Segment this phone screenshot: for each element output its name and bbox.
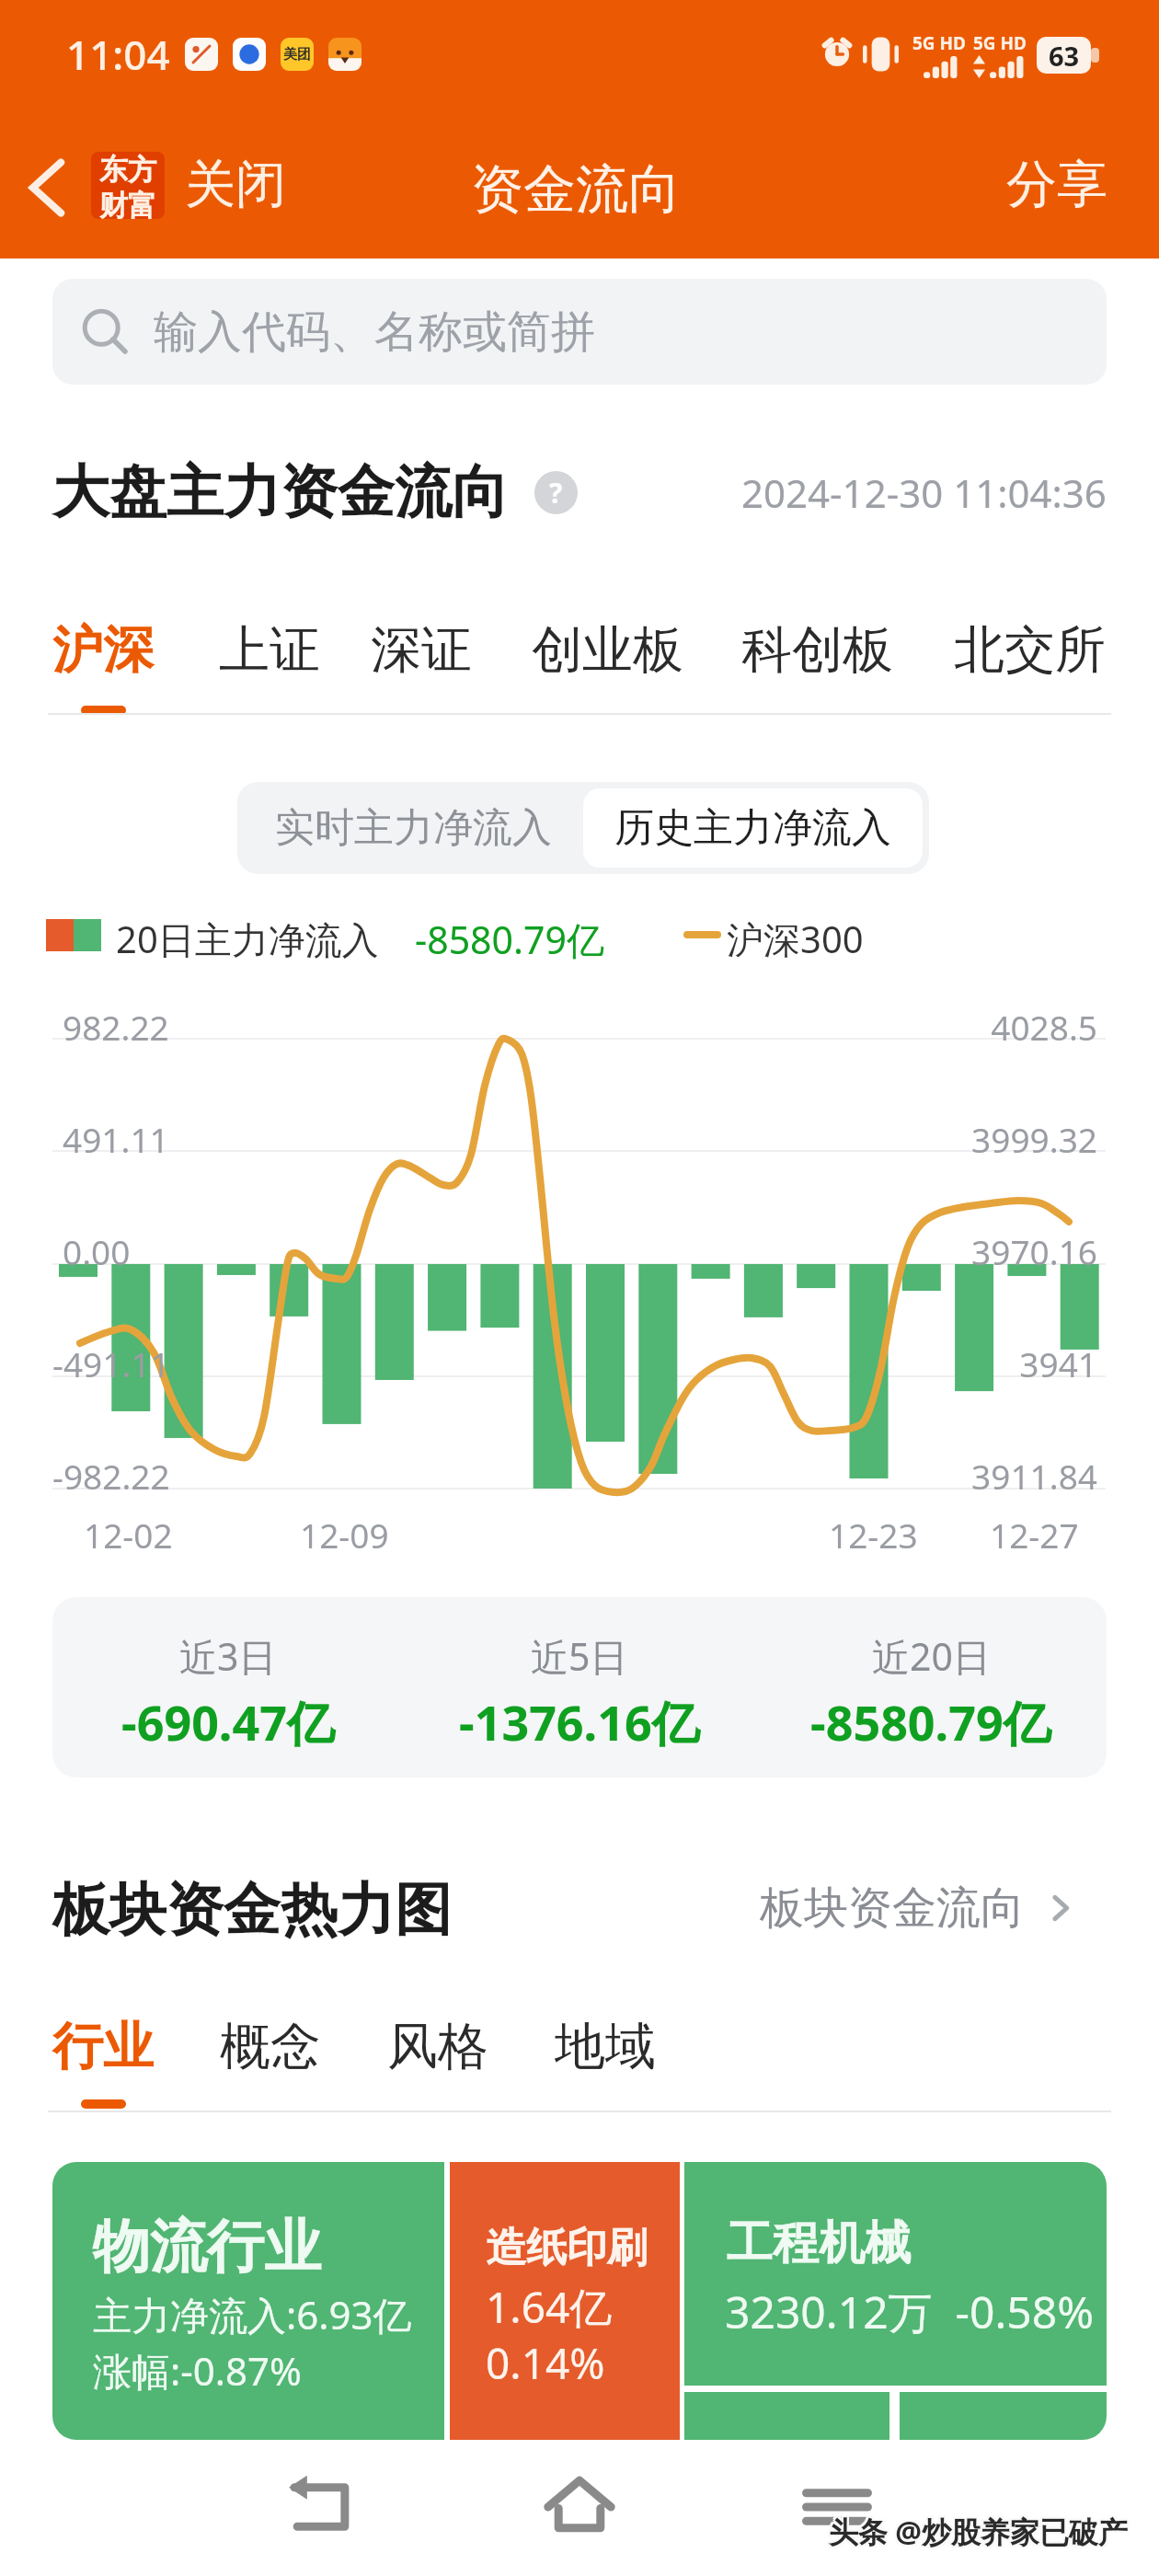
button[interactable]: 北交所 [954, 608, 1107, 691]
staticText: -8580.79亿 [810, 1689, 1051, 1754]
staticText: 491.11 [63, 1116, 169, 1162]
staticText: 0.14% [486, 2334, 605, 2392]
button[interactable]: Message notification [233, 38, 266, 71]
button[interactable] [684, 2392, 889, 2440]
staticText: 概念 [220, 2015, 321, 2078]
staticText: 3970.16 [819, 1228, 1097, 1274]
button[interactable]: 地域 [555, 2005, 658, 2087]
staticText: 东方 [99, 152, 156, 188]
staticText: -690.47亿 [121, 1689, 335, 1754]
staticText: -491.11 [52, 1340, 170, 1386]
staticText: 3941 [819, 1340, 1097, 1386]
staticText: 3999.32 [819, 1116, 1097, 1162]
staticText: 分享 [1006, 153, 1107, 216]
staticText: 4028.5 [819, 1004, 1097, 1050]
staticText: 12-09 [300, 1512, 389, 1558]
staticText: 沪深 [52, 618, 154, 682]
staticText: 大盘主力资金流向 [52, 456, 509, 528]
staticText: 造纸印刷 [486, 2223, 648, 2273]
staticText: 3230.12万 -0.58% [725, 2282, 1095, 2342]
staticText: 头条 @炒股养家已破产 [831, 2512, 1130, 2552]
staticText: 12-02 [84, 1512, 173, 1558]
button[interactable]: 沪深 [52, 608, 155, 691]
button[interactable]: 近20日 [755, 1597, 1107, 1777]
staticText: 3911.84 [819, 1453, 1097, 1499]
staticText: 创业板 [532, 618, 683, 682]
staticText: 0.00 [63, 1228, 131, 1274]
staticText: 63 [1049, 38, 1080, 74]
button[interactable]: Help [534, 471, 578, 514]
button[interactable]: 工程机械 [684, 2162, 1107, 2386]
staticText: 5G HD [973, 31, 1047, 55]
button[interactable]: 上证 [219, 608, 322, 691]
staticText: 输入代码、名称或简拼 [154, 305, 595, 360]
button[interactable]: 板块资金流向 [760, 1873, 1076, 1943]
button[interactable]: Back [17, 158, 76, 217]
staticText: 板块资金热力图 [52, 1874, 452, 1946]
staticText: 982.22 [63, 1004, 169, 1050]
button[interactable]: Home [520, 2447, 639, 2567]
staticText: 近3日 [179, 1630, 277, 1682]
button[interactable]: 风格 [387, 2005, 490, 2087]
button[interactable]: 近5日 [404, 1597, 755, 1777]
staticText: -8580.79亿 [415, 914, 604, 963]
button[interactable]: 物流行业 [52, 2162, 444, 2440]
staticText: 风格 [387, 2015, 488, 2078]
staticText: 资金流向 [471, 156, 681, 223]
staticText: 头条 @炒股养家已破产 [829, 2512, 1129, 2552]
staticText: 5G HD [912, 31, 986, 55]
staticText: 沪深300 [727, 914, 864, 963]
staticText: 财富 [99, 188, 156, 219]
staticText: 涨幅:-0.87% [93, 2344, 303, 2397]
button[interactable]: App notification [185, 38, 218, 71]
staticText: 近5日 [531, 1630, 628, 1682]
staticText: 头条 @炒股养家已破产 [829, 2513, 1129, 2554]
staticText: 关闭 [185, 153, 286, 216]
staticText: 头条 @炒股养家已破产 [829, 2512, 1129, 2552]
staticText: 物流行业 [93, 2211, 321, 2283]
staticText: 主力净流入:6.93亿 [93, 2288, 412, 2340]
staticText: 实时主力净流入 [275, 803, 552, 853]
staticText: ? [549, 474, 563, 512]
staticText: 头条 @炒股养家已破产 [827, 2513, 1127, 2554]
staticText: 历史主力净流入 [614, 803, 891, 853]
staticText: 工程机械 [727, 2214, 911, 2272]
button[interactable]: 历史主力净流入 [583, 788, 923, 868]
button[interactable]: 行业 [52, 2005, 155, 2087]
button[interactable]: 分享 [983, 138, 1130, 230]
button[interactable]: 创业板 [532, 608, 684, 691]
staticText: 头条 @炒股养家已破产 [827, 2510, 1127, 2550]
staticText: 头条 @炒股养家已破产 [827, 2512, 1127, 2552]
staticText: 头条 @炒股养家已破产 [831, 2510, 1130, 2550]
button[interactable]: 深证 [371, 608, 474, 691]
staticText: 20日主力净流入 [116, 914, 379, 963]
staticText: 深证 [371, 618, 472, 682]
button[interactable]: 科创板 [741, 608, 894, 691]
staticText: 11:04 [66, 27, 170, 82]
button[interactable]: Meituan notification [281, 38, 314, 71]
staticText: -982.22 [52, 1453, 170, 1499]
staticText: 北交所 [954, 618, 1106, 682]
staticText: 地域 [555, 2015, 656, 2078]
button[interactable]: 概念 [220, 2005, 323, 2087]
staticText: 头条 @炒股养家已破产 [829, 2510, 1129, 2550]
staticText: 2024-12-30 11:04:36 [741, 466, 1107, 519]
staticText: 12-23 [829, 1512, 918, 1558]
staticText: 上证 [219, 618, 320, 682]
staticText: 1.64亿 [486, 2278, 613, 2336]
staticText: 美团 [283, 46, 311, 63]
button[interactable]: 造纸印刷 [450, 2162, 680, 2440]
button[interactable]: Menu [777, 2447, 897, 2567]
button[interactable]: Back [261, 2447, 381, 2567]
button[interactable]: East Money logo [91, 152, 165, 219]
staticText: 板块资金流向 [760, 1880, 1025, 1936]
button[interactable]: 关闭 [180, 138, 291, 230]
button[interactable] [900, 2392, 1107, 2440]
button[interactable]: 近3日 [52, 1597, 404, 1777]
button[interactable]: Fox app notification [328, 38, 361, 71]
button[interactable]: 实时主力净流入 [244, 788, 583, 868]
staticText: 近20日 [872, 1630, 991, 1682]
staticText: 行业 [52, 2015, 154, 2078]
button[interactable]: 输入代码、名称或简拼 [52, 279, 1107, 385]
staticText: 科创板 [741, 618, 893, 682]
